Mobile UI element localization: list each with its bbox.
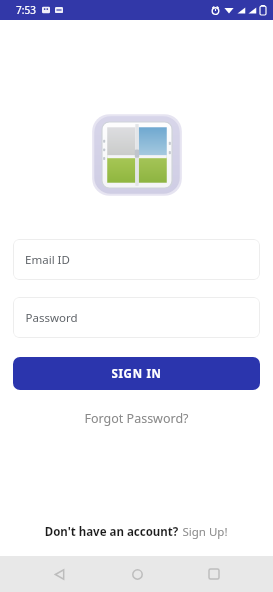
button[interactable]: Home <box>119 556 155 592</box>
staticText: 7:53 <box>16 3 36 17</box>
staticText: Sign Up! <box>182 524 228 540</box>
staticText: SIGN IN <box>111 366 162 382</box>
button[interactable]: Email ID <box>13 239 260 280</box>
staticText: Password <box>25 310 78 326</box>
button[interactable]: Sign Up! <box>180 522 230 542</box>
button[interactable]: SIGN IN <box>13 357 260 390</box>
button[interactable]: Password <box>13 297 260 338</box>
button[interactable]: Forgot Password? <box>76 407 197 430</box>
staticText: Don't have an account? <box>43 524 180 540</box>
staticText: Email ID <box>25 252 70 268</box>
button[interactable]: Recent apps <box>196 556 232 592</box>
staticText: Forgot Password? <box>84 410 189 427</box>
button[interactable]: Back <box>41 556 77 592</box>
